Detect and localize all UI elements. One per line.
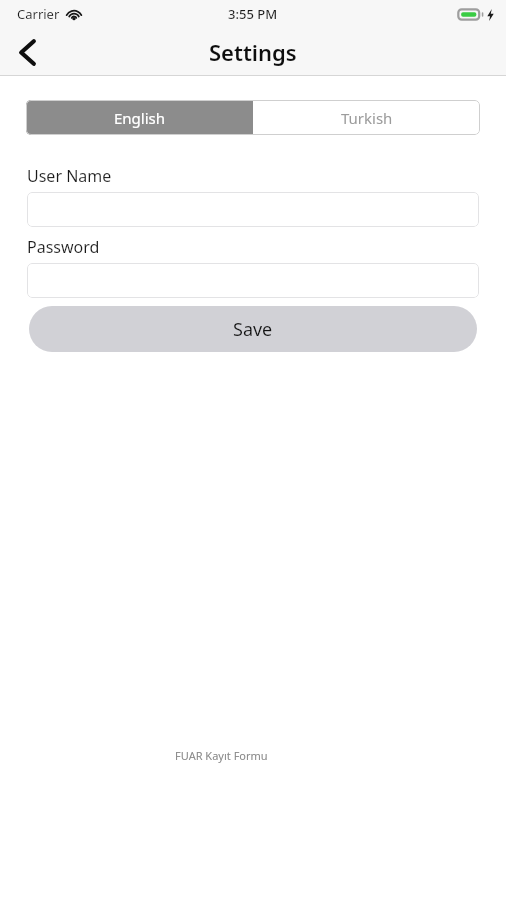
staticText: Password bbox=[27, 236, 100, 258]
staticText: Settings bbox=[209, 37, 297, 67]
staticText: FUAR Kayıt Formu bbox=[175, 748, 268, 763]
button[interactable]: English bbox=[26, 100, 253, 135]
staticText: English bbox=[114, 108, 166, 128]
button[interactable] bbox=[27, 192, 479, 227]
staticText: Turkish bbox=[341, 108, 393, 128]
button[interactable]: Turkish bbox=[253, 100, 480, 135]
button[interactable] bbox=[27, 263, 479, 298]
staticText: Save bbox=[233, 317, 273, 342]
staticText: 3:55 PM bbox=[228, 5, 278, 23]
button[interactable]: Save bbox=[29, 306, 477, 352]
staticText: Carrier bbox=[17, 5, 60, 23]
button[interactable]: Back bbox=[0, 28, 54, 76]
staticText: User Name bbox=[27, 165, 112, 187]
